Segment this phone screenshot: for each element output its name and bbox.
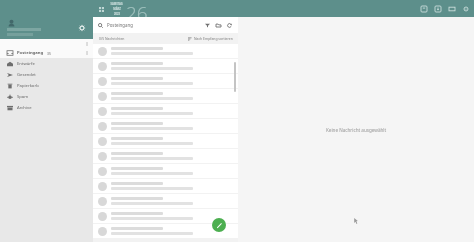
button[interactable]: Folders: [214, 21, 222, 29]
button[interactable]: [93, 194, 238, 208]
button[interactable]: [93, 164, 238, 178]
button[interactable]: Posteingang: [0, 47, 93, 58]
button[interactable]: Filter: [203, 21, 211, 29]
button[interactable]: Settings: [0, 17, 93, 39]
staticText: 2023: [114, 12, 120, 16]
button[interactable]: [93, 104, 238, 118]
staticText: Nach Empfang sortieren: [194, 36, 233, 41]
staticText: 26: [126, 0, 148, 17]
staticText: Entwürfe: [17, 61, 35, 67]
staticText: Spam: [17, 94, 29, 100]
button[interactable]: [93, 89, 238, 103]
button[interactable]: Apps: [97, 5, 105, 13]
staticText: Papierkorb: [17, 83, 39, 89]
button[interactable]: [93, 119, 238, 133]
staticText: 0/5 Nachrichten: [99, 36, 125, 41]
button[interactable]: [93, 44, 238, 58]
button[interactable]: Entwürfe: [0, 58, 93, 69]
staticText: Archive: [17, 105, 32, 111]
button[interactable]: Settings: [461, 4, 470, 13]
button[interactable]: Archive: [0, 102, 93, 113]
button[interactable]: Nach Empfang sortieren: [188, 36, 233, 41]
button[interactable]: [93, 179, 238, 193]
button[interactable]: Screenshot: [419, 4, 428, 13]
button[interactable]: Compose: [212, 218, 226, 232]
button[interactable]: [0, 39, 93, 47]
button[interactable]: Download: [433, 4, 442, 13]
staticText: Posteingang: [107, 22, 133, 28]
button[interactable]: [93, 59, 238, 73]
staticText: SAMSTAG: [110, 2, 123, 6]
button[interactable]: Gesendet: [0, 69, 93, 80]
staticText: Gesendet: [17, 72, 36, 78]
button[interactable]: Settings: [77, 23, 87, 33]
button[interactable]: Refresh: [225, 21, 233, 29]
button[interactable]: [93, 74, 238, 88]
staticText: MÄRZ: [113, 7, 121, 11]
button[interactable]: [93, 209, 238, 223]
button[interactable]: Posteingang: [93, 17, 238, 33]
button[interactable]: Spam: [0, 91, 93, 102]
button[interactable]: Papierkorb: [0, 80, 93, 91]
staticText: Posteingang: [17, 50, 44, 56]
staticText: 35: [47, 51, 51, 56]
button[interactable]: [93, 224, 238, 238]
staticText: Keine Nachricht ausgewählt: [326, 127, 387, 133]
button[interactable]: Battery: [447, 4, 456, 13]
button[interactable]: [93, 134, 238, 148]
button[interactable]: [93, 149, 238, 163]
